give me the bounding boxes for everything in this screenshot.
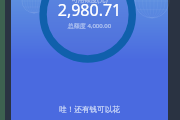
staticText: 哇！还有钱可以花 bbox=[11, 105, 168, 115]
staticText: 2,980.71 bbox=[11, 0, 168, 21]
staticText: 总额度 4,000.00 bbox=[11, 22, 168, 30]
staticText: 可用额度(元) bbox=[11, 0, 168, 4]
